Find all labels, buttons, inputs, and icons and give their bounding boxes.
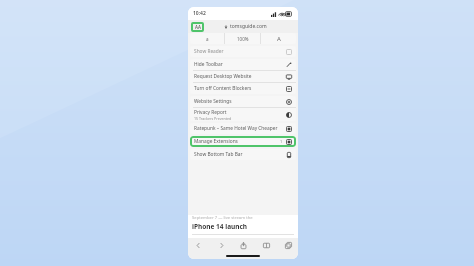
button[interactable]: Hide Toolbar [190,59,296,70]
staticText: 15 Trackers Prevented [194,116,232,121]
button[interactable]: Manage Extensions [190,136,296,147]
button[interactable]: Back [193,240,203,250]
staticText: Show Reader [194,48,224,55]
button[interactable]: Page settings [191,22,204,32]
staticText: Ratepunk – Same Hotel Way Cheaper [194,125,278,132]
button[interactable]: Website Settings [190,96,296,107]
staticText: Show Bottom Tab Bar [194,151,243,158]
button[interactable]: Forward [216,240,226,250]
button[interactable]: Privacy Report [190,108,296,121]
button[interactable]: Request Desktop Website [190,71,296,82]
button[interactable]: Share [238,240,248,250]
staticText: 10:42 [193,10,206,17]
button[interactable]: Tabs [283,240,293,250]
button[interactable]: Bookmarks [261,240,271,250]
staticText: AA [195,24,201,30]
button[interactable]: A [261,33,296,44]
staticText: a [206,36,209,42]
staticText: 100% [237,36,249,42]
staticText: Privacy Report [194,109,227,116]
staticText: Website Settings [194,98,232,105]
staticText: Turn off Content Blockers [194,85,252,92]
button[interactable]: Ratepunk – Same Hotel Way Cheaper [190,123,296,134]
staticText: 1 [280,139,283,144]
staticText: September 7 — live stream the [192,215,253,221]
staticText: tomsguide.com [230,23,267,30]
button[interactable]: Show Bottom Tab Bar [190,149,296,160]
staticText: A [277,35,281,43]
button[interactable]: 100% [225,33,260,44]
staticText: Manage Extensions [194,138,238,145]
staticText: iPhone 14 launch [192,222,248,231]
staticText: Hide Toolbar [194,61,223,68]
button[interactable]: a [190,33,224,44]
button[interactable]: Turn off Content Blockers [190,83,296,94]
button[interactable]: Show Reader [190,46,296,57]
staticText: Request Desktop Website [194,73,252,80]
